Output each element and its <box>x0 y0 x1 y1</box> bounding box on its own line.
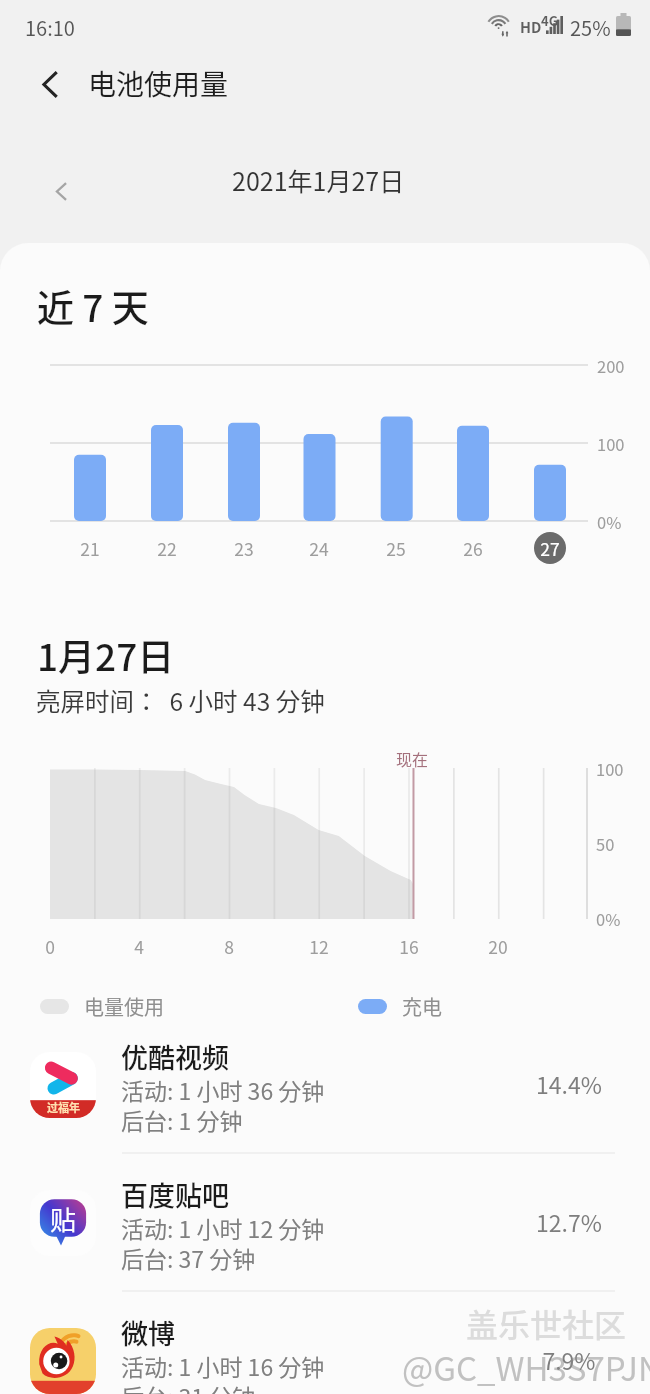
staticText: 后台: 37 分钟 <box>121 1241 256 1274</box>
staticText: 充电 <box>402 992 442 1021</box>
staticText: 25% <box>570 13 611 42</box>
button[interactable]: 26 <box>453 536 493 560</box>
staticText: @GC_WH3S7PJN <box>402 1343 650 1391</box>
staticText: 12.7% <box>536 1205 602 1235</box>
staticText: 百度贴吧 <box>121 1175 229 1214</box>
staticText: 电量使用 <box>84 992 164 1021</box>
staticText: 现在 <box>396 747 429 770</box>
staticText: 活动: 1 小时 12 分钟 <box>121 1211 325 1244</box>
staticText: 27 <box>540 536 560 560</box>
button[interactable]: 电量使用 <box>40 992 164 1021</box>
staticText: 后台: 1 分钟 <box>121 1103 243 1136</box>
button[interactable]: 微博 <box>0 1308 650 1394</box>
button[interactable]: 22 <box>147 536 187 560</box>
staticText: 微博 <box>121 1313 175 1352</box>
staticText: 盖乐世社区 <box>466 1300 627 1346</box>
staticText: 亮屏时间： 6 小时 43 分钟 <box>36 683 325 718</box>
staticText: 200 <box>597 354 625 378</box>
staticText: 电池使用量 <box>88 63 229 104</box>
staticText: 0% <box>596 907 621 931</box>
staticText: 22 <box>157 536 177 560</box>
staticText: 21 <box>80 536 100 560</box>
staticText: 20 <box>488 934 508 958</box>
staticText: 贴 <box>50 1200 77 1238</box>
staticText: 23 <box>234 536 254 560</box>
staticText: 24 <box>309 536 329 560</box>
button[interactable]: Previous day <box>38 168 84 214</box>
staticText: 近 7 天 <box>37 279 149 333</box>
staticText: 4G <box>541 11 558 30</box>
staticText: 0 <box>45 934 55 958</box>
staticText: 后台: 31 分钟 <box>121 1379 256 1394</box>
staticText: 2021年1月27日 <box>232 162 405 198</box>
button[interactable]: Back <box>22 56 78 112</box>
staticText: 1月27日 <box>37 628 175 682</box>
staticText: 25 <box>386 536 406 560</box>
staticText: HD <box>520 16 542 37</box>
button[interactable]: 25 <box>376 536 416 560</box>
button[interactable]: 贴 <box>0 1170 650 1308</box>
button[interactable]: 过福年 <box>0 1032 650 1170</box>
staticText: 26 <box>463 536 483 560</box>
button[interactable]: 21 <box>70 536 110 560</box>
staticText: 4 <box>134 934 144 958</box>
staticText: 12 <box>309 934 329 958</box>
staticText: 100 <box>596 757 624 781</box>
staticText: 100 <box>597 432 625 456</box>
button[interactable]: 充电 <box>358 992 442 1021</box>
staticText: 14.4% <box>536 1067 602 1097</box>
staticText: 0% <box>597 510 622 534</box>
staticText: 过福年 <box>47 1099 80 1115</box>
staticText: 活动: 1 小时 36 分钟 <box>121 1073 325 1106</box>
staticText: 16:10 <box>25 13 75 42</box>
staticText: 7.9% <box>542 1343 596 1373</box>
staticText: 16 <box>399 934 419 958</box>
button[interactable]: 27 <box>530 536 570 560</box>
button[interactable]: 23 <box>224 536 264 560</box>
staticText: 优酷视频 <box>121 1037 229 1076</box>
button[interactable]: 24 <box>299 536 339 560</box>
staticText: 8 <box>224 934 234 958</box>
staticText: 50 <box>596 832 615 856</box>
staticText: 活动: 1 小时 16 分钟 <box>121 1349 325 1382</box>
